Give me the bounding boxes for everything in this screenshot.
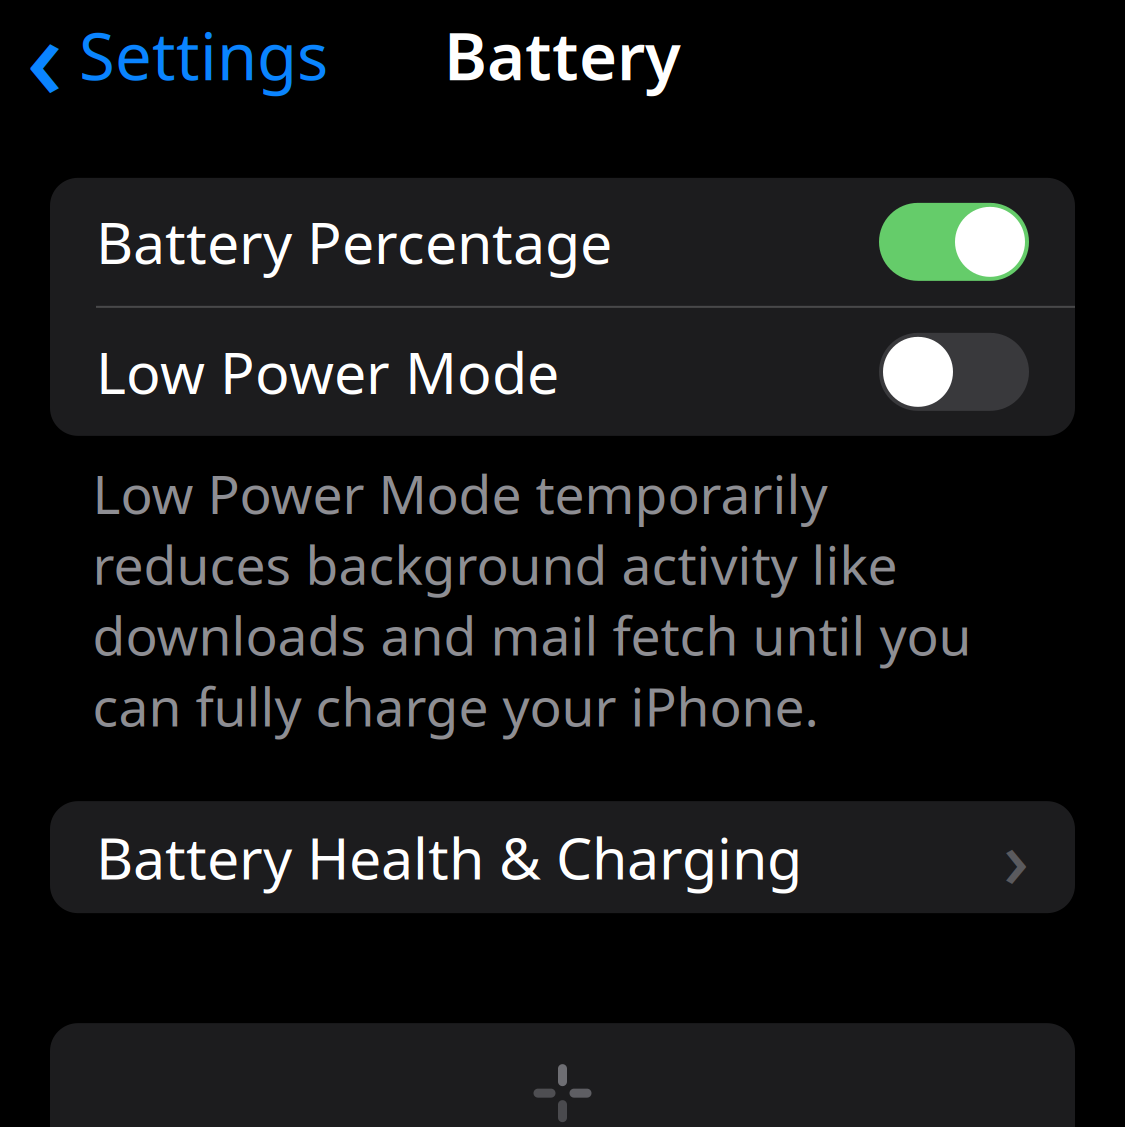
button[interactable]: Low Power Mode bbox=[50, 308, 1075, 436]
button[interactable]: Back to Settings bbox=[0, 0, 328, 141]
button[interactable]: Battery Health & Charging bbox=[50, 801, 1075, 913]
staticText: Battery bbox=[444, 11, 681, 98]
staticText: Settings bbox=[79, 11, 328, 98]
button[interactable]: Battery Percentage bbox=[50, 178, 1075, 306]
staticText: Battery Health & Charging bbox=[96, 819, 802, 895]
staticText: Low Power Mode temporarily reduces backg… bbox=[92, 458, 971, 741]
staticText: Battery Percentage bbox=[96, 204, 612, 280]
staticText: › bbox=[1003, 804, 1029, 910]
staticText: ‹ bbox=[26, 0, 63, 131]
staticText: Low Power Mode bbox=[96, 334, 559, 410]
